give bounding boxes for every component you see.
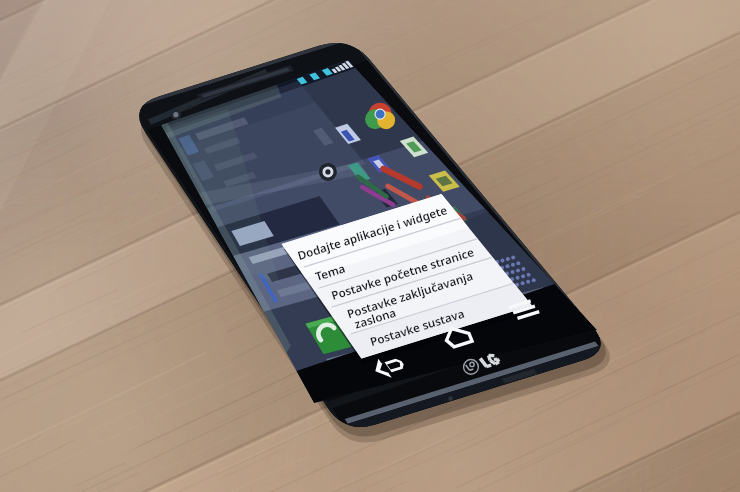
other: LG phone on a wooden table showing the h…: [0, 0, 740, 492]
